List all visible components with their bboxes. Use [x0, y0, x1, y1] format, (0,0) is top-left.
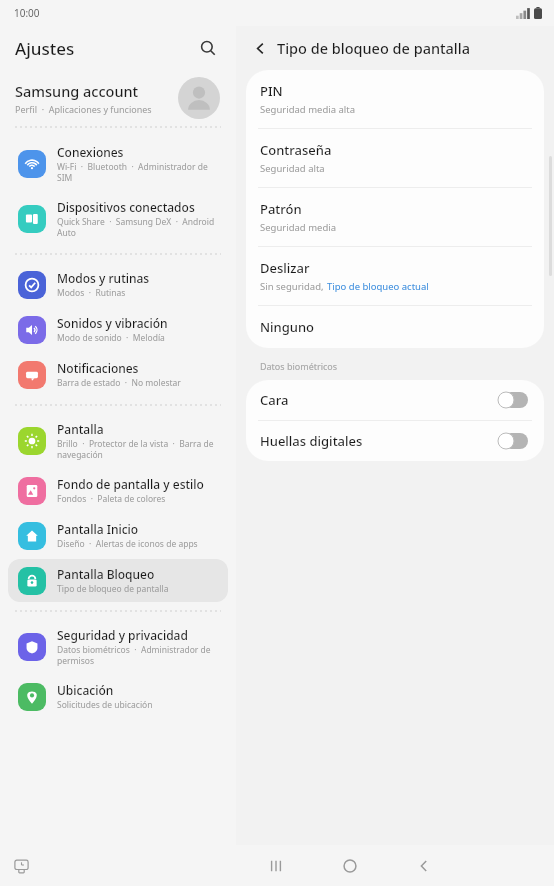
staticText: Notificaciones — [57, 360, 139, 376]
button[interactable]: Cara — [246, 380, 544, 420]
button[interactable]: Buscar — [194, 34, 222, 62]
staticText: Sonidos y vibración — [57, 315, 168, 331]
button[interactable]: Patrón — [246, 188, 544, 246]
staticText: Wi-Fi · Bluetooth · Administrador de SIM — [57, 161, 220, 183]
staticText: Conexiones — [57, 144, 124, 160]
button[interactable]: Pantalla Inicio — [8, 514, 228, 557]
button[interactable]: Pantalla Bloqueo — [8, 559, 228, 602]
staticText: Barra de estado · No molestar — [57, 377, 181, 389]
button[interactable]: PIN — [246, 70, 544, 128]
staticText: Solicitudes de ubicación — [57, 699, 153, 711]
staticText: Ajustes — [15, 37, 75, 60]
button[interactable]: Sonidos y vibración — [8, 308, 228, 351]
staticText: Seguridad media alta — [260, 103, 356, 116]
staticText: Modos · Rutinas — [57, 287, 126, 299]
staticText: PIN — [260, 82, 283, 100]
staticText: Fondos · Paleta de colores — [57, 493, 166, 505]
staticText: Ubicación — [57, 682, 114, 698]
staticText: Quick Share · Samsung DeX · Android Auto — [57, 216, 220, 238]
staticText: Seguridad y privacidad — [57, 627, 188, 643]
staticText: Deslizar — [260, 259, 310, 277]
staticText: Pantalla Bloqueo — [57, 566, 155, 582]
staticText: Diseño · Alertas de iconos de apps — [57, 538, 198, 550]
button[interactable]: Ninguno — [246, 306, 544, 348]
button[interactable]: Conexiones — [8, 137, 228, 190]
staticText: Tipo de bloqueo de pantalla — [57, 583, 169, 595]
staticText: Datos biométricos · Administrador de per… — [57, 644, 220, 666]
staticText: Brillo · Protector de la vista · Barra d… — [57, 438, 220, 460]
staticText: Contraseña — [260, 141, 332, 159]
button[interactable]: Modos y rutinas — [8, 263, 228, 306]
staticText: Datos biométricos — [260, 360, 338, 372]
button[interactable]: Fondo de pantalla y estilo — [8, 469, 228, 512]
button[interactable]: Deslizar — [246, 247, 544, 305]
staticText: Cara — [260, 391, 289, 409]
button[interactable]: Atrás — [409, 851, 439, 881]
staticText: Sin seguridad, — [260, 280, 327, 293]
staticText: Samsung account — [15, 81, 139, 101]
staticText: Huellas digitales — [260, 432, 363, 450]
staticText: Perfil · Aplicaciones y funciones — [15, 103, 152, 115]
staticText: Pantalla Inicio — [57, 521, 139, 537]
button[interactable]: Notificaciones — [8, 353, 228, 396]
button[interactable]: Samsung account — [0, 70, 236, 126]
button[interactable]: Recientes — [261, 851, 291, 881]
staticText: Pantalla — [57, 421, 104, 437]
staticText: Tipo de bloqueo actual — [327, 280, 429, 293]
button[interactable]: Huellas digitales — [246, 421, 544, 461]
staticText: Modo de sonido · Melodía — [57, 332, 165, 344]
button[interactable]: Seguridad y privacidad — [8, 620, 228, 673]
staticText: Dispositivos conectados — [57, 199, 195, 215]
staticText: Fondo de pantalla y estilo — [57, 476, 204, 492]
button[interactable]: Dispositivos conectados — [8, 192, 228, 245]
staticText: 10:00 — [14, 6, 40, 20]
button[interactable]: Atrás — [246, 34, 274, 62]
button[interactable]: Pantalla — [8, 414, 228, 467]
staticText: Ninguno — [260, 318, 315, 336]
staticText: Modos y rutinas — [57, 270, 150, 286]
button[interactable]: Inicio — [335, 851, 365, 881]
button[interactable]: Ubicación — [8, 675, 228, 718]
staticText: Seguridad alta — [260, 162, 325, 175]
staticText: Tipo de bloqueo de pantalla — [277, 38, 470, 58]
staticText: Seguridad media — [260, 221, 337, 234]
button[interactable]: Contraseña — [246, 129, 544, 187]
button[interactable]: Ocultar teclado — [8, 853, 34, 879]
staticText: Patrón — [260, 200, 302, 218]
